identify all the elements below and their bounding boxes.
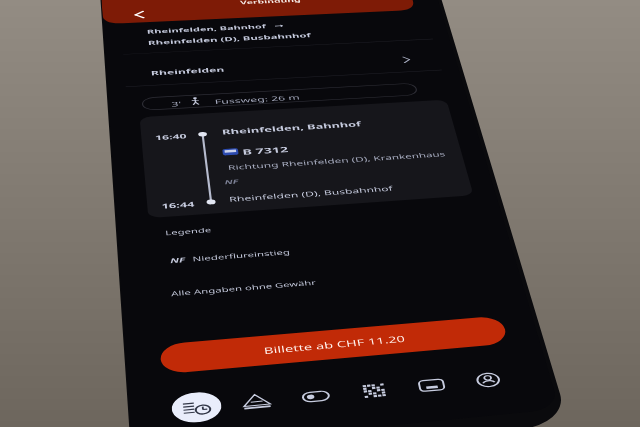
staticText: 16:40	[155, 131, 188, 142]
staticText: Rheinfelden, Bahnhof →	[146, 22, 284, 36]
staticText: Rheinfelden (D), Busbahnhof	[147, 31, 312, 46]
staticText: Rheinfelden	[150, 65, 225, 77]
staticText: Rheinfelden, Bahnhof	[221, 119, 363, 136]
staticText: NF	[170, 255, 186, 265]
button[interactable]: Ticket QR code	[346, 373, 403, 409]
staticText: Niederflureinstieg	[192, 247, 291, 263]
button[interactable]: Profile	[460, 363, 517, 398]
staticText: Rheinfelden (D), Busbahnhof	[228, 184, 394, 204]
staticText: Verbindung	[239, 0, 302, 6]
staticText: Richtung Rheinfelden (D), Krankenhaus	[227, 150, 447, 172]
staticText: Billette ab CHF 11.20	[263, 332, 406, 356]
button[interactable]: Wallet	[403, 368, 460, 403]
staticText: 16:44	[161, 199, 196, 210]
staticText: NF	[224, 177, 239, 186]
button[interactable]: Timetable	[170, 390, 223, 425]
staticText: Alle Angaben ohne Gewähr	[171, 278, 317, 298]
button[interactable]: EasyRide	[287, 378, 344, 414]
staticText: 3'	[171, 99, 182, 109]
staticText: Fussweg: 26 m	[214, 93, 301, 106]
staticText: B 7312	[242, 144, 290, 157]
button[interactable]: Travel guide	[228, 383, 285, 420]
staticText: Legende	[165, 225, 212, 237]
